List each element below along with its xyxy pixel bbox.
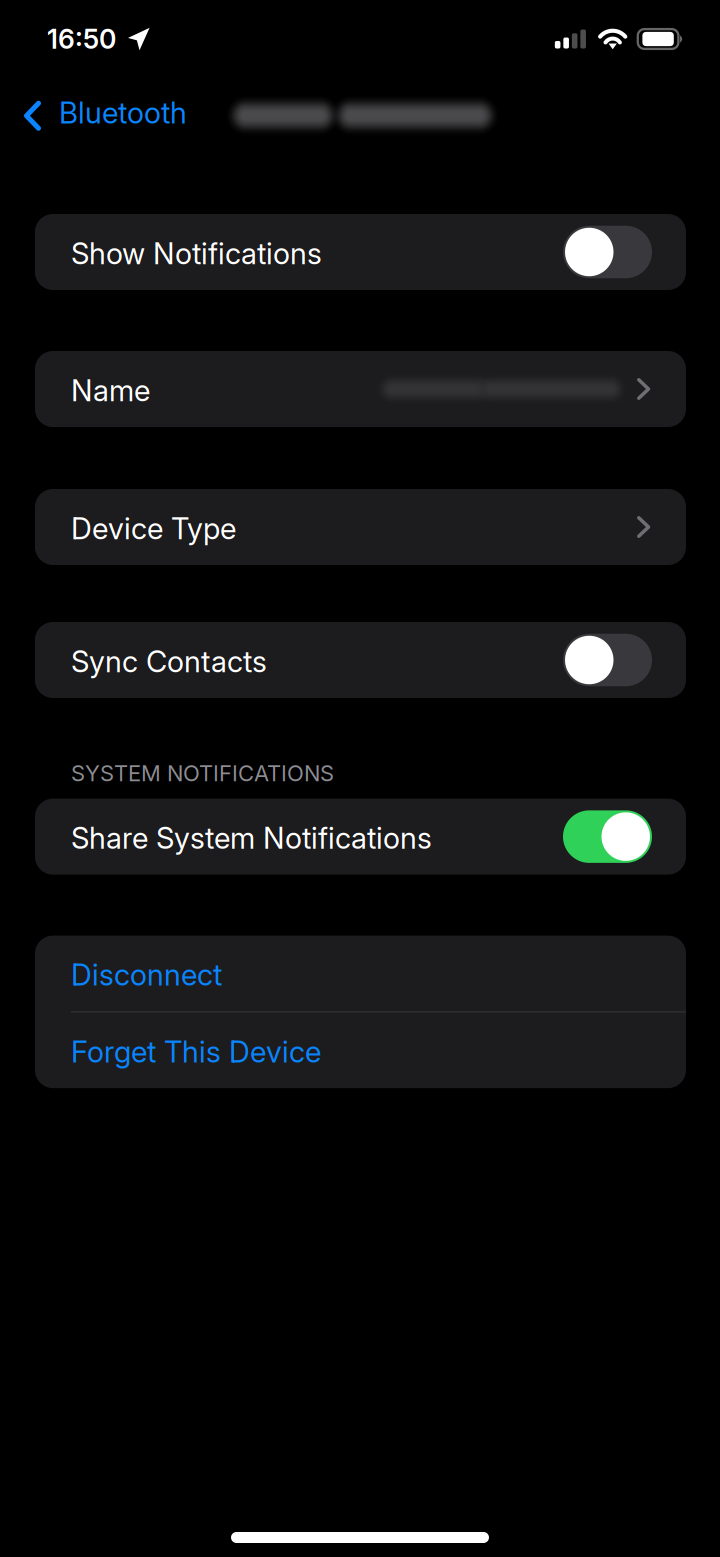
staticText: Device Type <box>71 511 236 546</box>
staticText: Sync Contacts <box>71 644 267 679</box>
staticText: 16:50 <box>47 23 116 55</box>
staticText: Share System Notifications <box>71 820 432 856</box>
button[interactable]: Share System Notifications <box>35 799 686 875</box>
button[interactable]: Forget This Device <box>35 1013 686 1088</box>
button[interactable]: Disconnect <box>35 936 686 1011</box>
button[interactable]: Sync Contacts <box>35 622 686 698</box>
button[interactable]: Name <box>35 351 686 427</box>
staticText: Forget This Device <box>71 1034 321 1070</box>
staticText: Name <box>71 373 150 408</box>
button[interactable]: Show Notifications <box>35 214 686 290</box>
staticText: Show Notifications <box>71 236 322 271</box>
button[interactable]: Bluetooth <box>0 78 260 144</box>
staticText: SYSTEM NOTIFICATIONS <box>71 760 334 787</box>
button[interactable]: Device Type <box>35 489 686 565</box>
staticText: Disconnect <box>71 957 222 993</box>
staticText: Bluetooth <box>59 95 187 130</box>
